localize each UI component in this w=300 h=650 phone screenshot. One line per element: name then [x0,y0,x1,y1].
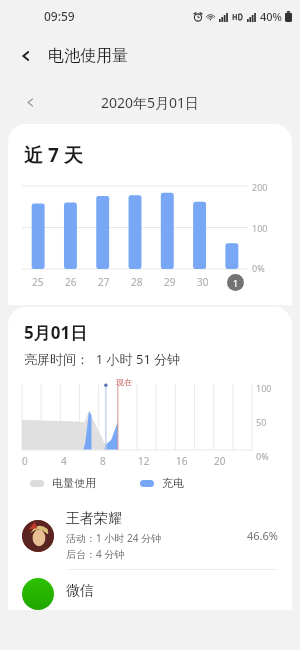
staticText: 1 [233,277,239,289]
staticText: 活动：1 小时 24 分钟 [66,531,161,545]
button[interactable]: 近 7 天 [8,124,292,305]
staticText: 12 [138,454,150,468]
staticText: 20 [214,454,226,468]
staticText: 0% [256,450,269,462]
staticText: 100 [256,382,272,394]
staticText: 0% [252,262,265,274]
staticText: 16 [176,454,188,468]
staticText: 充电 [162,476,184,490]
button[interactable]: 王者荣耀 [8,502,292,569]
staticText: 近 7 天 [24,142,83,168]
staticText: 8 [100,454,106,468]
staticText: 亮屏时间： 1 小时 51 分钟 [24,350,181,368]
staticText: 27 [98,275,110,289]
staticText: 26 [65,275,77,289]
staticText: 40% [260,9,282,24]
staticText: 4 [61,454,67,468]
staticText: 电量使用 [52,476,96,490]
staticText: 电池使用量 [48,46,128,66]
staticText: 25 [32,275,44,289]
button[interactable]: Back [8,38,44,74]
staticText: 28 [131,275,143,289]
staticText: 0 [22,454,28,468]
staticText: 200 [252,181,268,193]
staticText: 30 [197,275,209,289]
staticText: 现在 [116,377,132,387]
staticText: 王者荣耀 [66,510,122,528]
staticText: 2020年5月01日 [101,93,200,112]
staticText: 09:59 [44,8,75,24]
staticText: 后台：4 分钟 [66,547,125,561]
staticText: 100 [252,222,268,234]
staticText: 46.6% [247,528,278,543]
button[interactable]: 微信 [8,570,292,610]
staticText: 50 [256,416,267,428]
staticText: 29 [164,275,176,289]
staticText: 5月01日 [24,321,88,344]
button[interactable]: Previous day [14,86,46,118]
staticText: 微信 [66,582,94,600]
